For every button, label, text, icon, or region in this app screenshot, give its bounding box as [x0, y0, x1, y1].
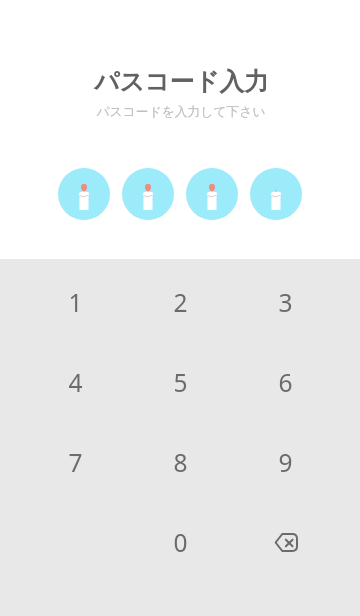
staticText: 5	[173, 366, 188, 399]
button[interactable]: 5	[128, 342, 233, 422]
staticText: 9	[278, 446, 293, 479]
button[interactable]: 3	[233, 262, 338, 342]
button[interactable]: 4	[23, 342, 128, 422]
button[interactable]: 9	[233, 422, 338, 502]
button[interactable]: 0	[128, 502, 233, 582]
button[interactable]: 1	[23, 262, 128, 342]
staticText: パスコードを入力して下さい	[96, 104, 266, 120]
button[interactable]: 7	[23, 422, 128, 502]
button[interactable]: Digit 2 entered	[122, 168, 174, 220]
button[interactable]: Digit 3 entered	[186, 168, 238, 220]
staticText: パスコード入力	[94, 66, 269, 97]
staticText: 4	[68, 366, 83, 399]
button[interactable]: 8	[128, 422, 233, 502]
staticText: 1	[68, 286, 83, 319]
button[interactable]: 6	[233, 342, 338, 422]
staticText: 6	[278, 366, 293, 399]
button[interactable]: 2	[128, 262, 233, 342]
button[interactable]: Digit 1 entered	[58, 168, 110, 220]
staticText: 3	[278, 286, 293, 319]
staticText: 0	[173, 526, 188, 559]
button[interactable]: Digit 4 empty	[250, 168, 302, 220]
staticText: 8	[173, 446, 188, 479]
staticText: 2	[173, 286, 188, 319]
button[interactable]: Backspace	[233, 502, 338, 582]
staticText: 7	[68, 446, 83, 479]
